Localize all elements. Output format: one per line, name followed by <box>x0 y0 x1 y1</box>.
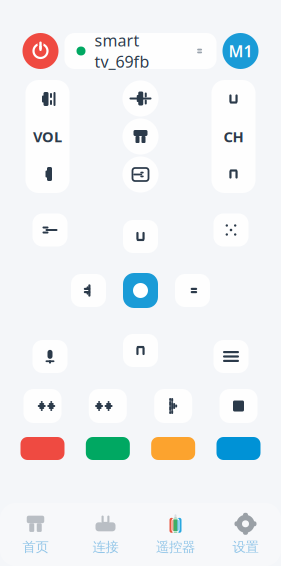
staticText: 连接 <box>92 539 118 555</box>
staticText: M1 <box>228 40 252 62</box>
button[interactable]: Down <box>123 334 158 367</box>
button[interactable]: 遥控器 <box>140 511 210 557</box>
button[interactable]: smart tv_69fb <box>64 33 216 69</box>
button[interactable]: Volume up <box>25 80 69 118</box>
button[interactable]: Channel up <box>211 80 255 118</box>
button[interactable]: Input source <box>122 156 158 192</box>
button[interactable]: Play <box>154 389 192 423</box>
button[interactable]: Fast forward <box>89 389 127 423</box>
staticText: VOL <box>33 127 62 146</box>
staticText: 设置 <box>232 539 258 555</box>
button[interactable]: Left <box>71 274 106 307</box>
button[interactable]: Close <box>213 213 248 246</box>
button[interactable]: Blue <box>216 437 260 460</box>
button[interactable]: Stop <box>219 389 257 423</box>
button[interactable]: Voice <box>32 340 67 373</box>
button[interactable]: Volume down <box>25 155 69 193</box>
button[interactable]: Rewind <box>23 389 61 423</box>
button[interactable]: Power <box>22 33 58 69</box>
button[interactable]: Back <box>32 213 67 246</box>
button[interactable]: Green <box>86 437 130 460</box>
staticText: smart tv_69fb <box>94 30 149 72</box>
button[interactable]: 首页 <box>0 511 70 557</box>
button[interactable]: Mute <box>122 80 158 116</box>
button[interactable]: OK <box>123 273 158 308</box>
button[interactable]: Up <box>123 220 158 253</box>
button[interactable]: Channel down <box>211 155 255 193</box>
button[interactable]: 设置 <box>210 511 280 557</box>
staticText: CH <box>223 127 243 146</box>
button[interactable]: Right <box>175 274 210 307</box>
button[interactable]: Red <box>20 437 64 460</box>
staticText: 遥控器 <box>156 539 195 555</box>
staticText: 首页 <box>22 539 48 555</box>
button[interactable]: Home <box>122 118 158 154</box>
button[interactable]: Yellow <box>151 437 195 460</box>
button[interactable]: Macro M1 <box>222 33 258 69</box>
button[interactable]: Menu <box>213 340 248 373</box>
button[interactable]: 连接 <box>70 511 140 557</box>
